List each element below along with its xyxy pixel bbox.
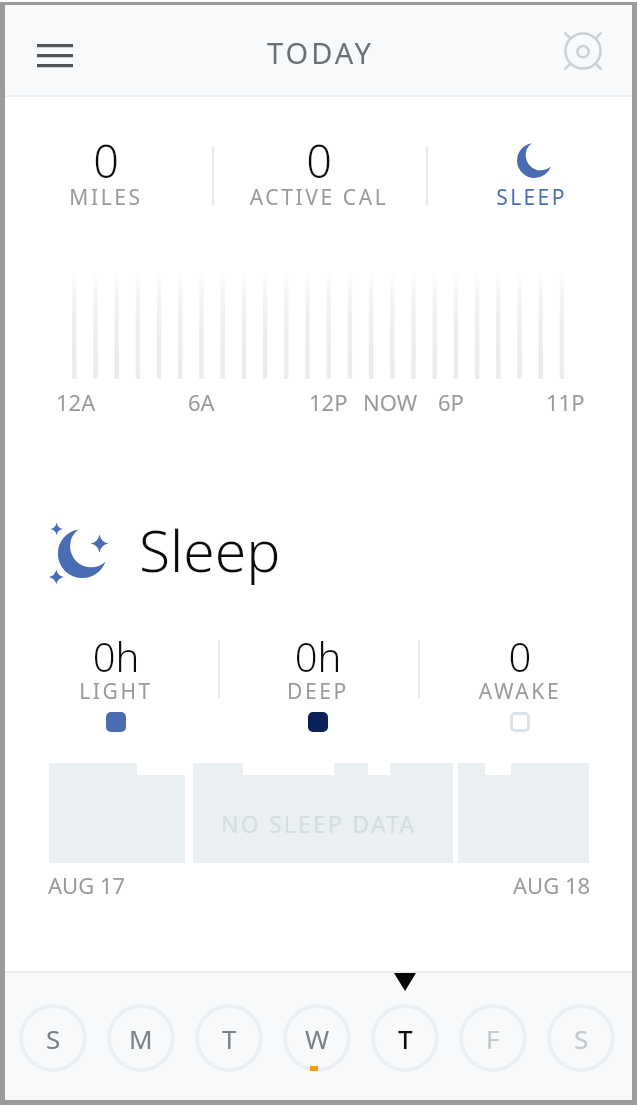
staticText: 12A [56, 387, 96, 417]
staticText: AUG 17 [48, 870, 126, 900]
button[interactable]: 0 [0, 125, 212, 220]
staticText: 12P [309, 387, 348, 417]
button[interactable]: T [371, 1004, 439, 1072]
button[interactable]: S [547, 1004, 615, 1072]
button[interactable]: S [19, 1004, 87, 1072]
staticText: DEEP [217, 677, 419, 706]
button[interactable]: 0h [15, 624, 217, 740]
staticText: W [305, 1021, 330, 1056]
staticText: 0h [217, 629, 419, 683]
staticText: M [129, 1021, 153, 1056]
staticText: 0 [212, 130, 426, 191]
staticText: S [46, 1021, 61, 1056]
staticText: S [574, 1021, 589, 1056]
staticText: AWAKE [419, 677, 621, 706]
staticText: NOW [363, 387, 418, 417]
staticText: 11P [546, 387, 585, 417]
staticText: LIGHT [15, 677, 217, 706]
staticText: ACTIVE CAL [212, 183, 426, 212]
staticText: Sleep [139, 511, 281, 589]
button[interactable]: W [283, 1004, 351, 1072]
staticText: T [222, 1021, 237, 1056]
button[interactable]: T [195, 1004, 263, 1072]
staticText: F [486, 1021, 500, 1056]
staticText: 0 [419, 629, 621, 683]
staticText: T [398, 1021, 413, 1056]
staticText: TODAY [2, 33, 637, 72]
staticText: 6P [438, 387, 464, 417]
button[interactable]: F [459, 1004, 527, 1072]
button[interactable]: M [107, 1004, 175, 1072]
button[interactable]: SLEEP [426, 125, 637, 220]
staticText: SLEEP [426, 183, 637, 212]
button[interactable]: 0h [217, 624, 419, 740]
button[interactable]: Sync device [557, 25, 608, 76]
staticText: AUG 18 [513, 870, 591, 900]
staticText: MILES [0, 183, 212, 212]
button[interactable]: 0 [419, 624, 621, 740]
button[interactable]: 0 [212, 125, 426, 220]
staticText: 0 [0, 130, 212, 191]
staticText: 0h [15, 629, 217, 683]
staticText: NO SLEEP DATA [221, 808, 417, 839]
staticText: 6A [188, 387, 215, 417]
button[interactable]: Open navigation menu [30, 30, 80, 80]
